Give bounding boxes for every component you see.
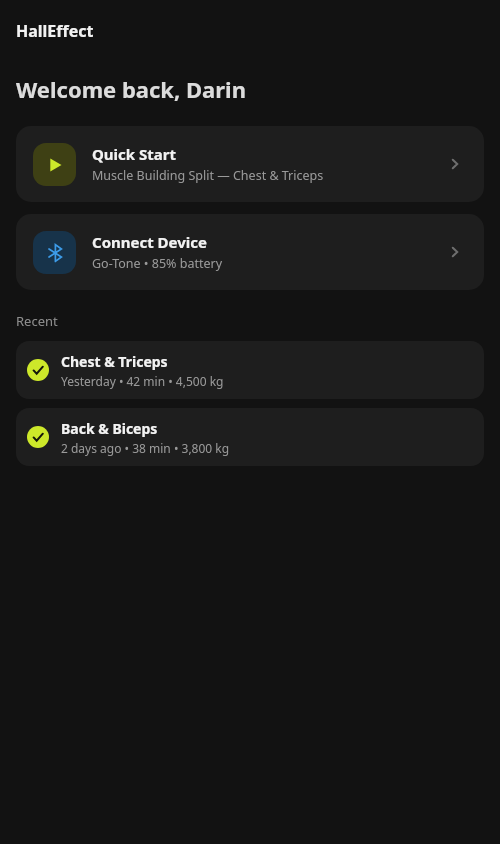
button[interactable]: Open Connect Device [443,240,467,264]
staticText: HallEffect [16,20,94,42]
staticText: Connect Device [92,232,207,252]
staticText: Recent [16,312,58,330]
staticText: Muscle Building Split — Chest & Triceps [92,167,324,184]
staticText: 2 days ago • 38 min • 3,800 kg [61,440,230,456]
button[interactable]: Chest & Triceps [16,341,484,399]
button[interactable]: Back & Biceps [16,408,484,466]
button[interactable]: Quick Start [16,126,484,202]
staticText: Chest & Triceps [61,352,168,371]
staticText: Welcome back, Darin [16,74,246,104]
staticText: Back & Biceps [61,419,158,438]
button[interactable]: Open Quick Start [443,152,467,176]
button[interactable]: Connect Device [16,214,484,290]
staticText: Quick Start [92,144,177,164]
staticText: Go-Tone • 85% battery [92,255,223,272]
staticText: Yesterday • 42 min • 4,500 kg [61,373,224,389]
